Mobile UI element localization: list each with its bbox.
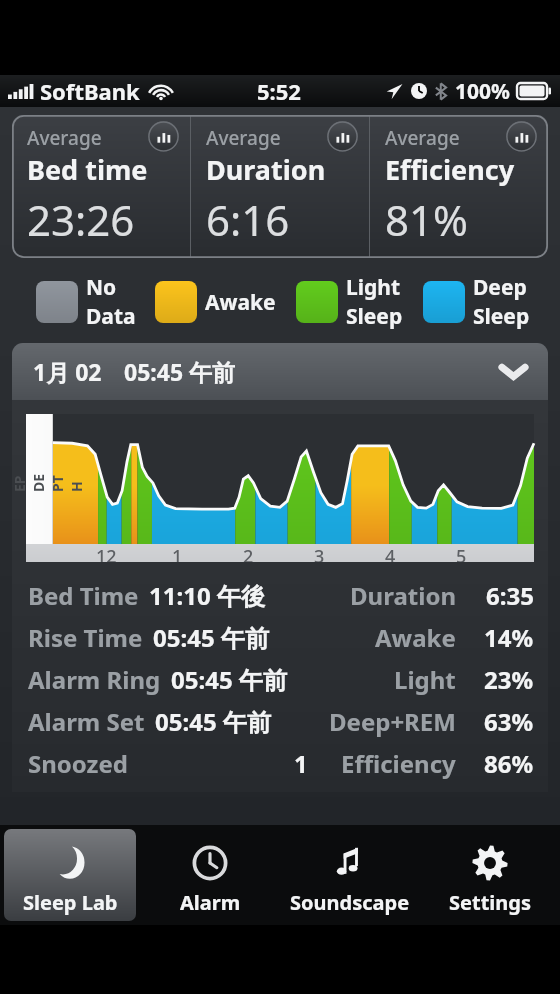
staticText: Duration [206,151,326,188]
staticText: 12 [96,544,117,562]
staticText: 2 [243,544,254,562]
button[interactable]: Sleep Lab [4,829,136,921]
other: Expand [500,363,527,380]
staticText: Sleep [346,302,403,331]
staticText: 1 [294,747,308,780]
staticText: 11:10 午後 [149,579,265,612]
button[interactable]: Settings [424,829,556,921]
button[interactable]: Light [296,273,403,331]
staticText: 05:45 午前 [153,621,269,654]
staticText: Alarm [180,889,241,916]
staticText: Deep+REM [329,705,456,738]
staticText: 63% [484,705,534,738]
staticText: Bed Time [28,579,139,612]
staticText: Average [385,125,460,151]
button[interactable]: Alarm Set [28,700,534,742]
staticText: 3 [314,544,325,562]
staticText: Alarm Set [28,705,145,738]
staticText: Deep [473,273,527,302]
staticText: 05:45 午前 [155,705,271,738]
button[interactable]: 1月 02 [12,343,548,400]
staticText: Duration [350,579,456,612]
other: Chart [506,121,537,152]
staticText: 1月 02 [33,356,102,387]
staticText: 6:16 [206,191,290,248]
button[interactable]: Average [12,115,190,258]
button[interactable]: Soundscape [284,829,416,921]
other: Chart [148,121,179,152]
staticText: Awake [205,288,276,317]
staticText: Average [206,125,281,151]
staticText: 05:45 午前 [124,356,236,387]
staticText: 23:26 [27,191,135,248]
staticText: 6:35 [486,579,534,612]
staticText: Snoozed [28,747,128,780]
staticText: 100% [455,77,510,106]
staticText: Rise Time [28,621,143,654]
staticText: 23% [484,663,534,696]
staticText: Average [27,125,102,151]
staticText: Data [86,302,136,331]
button[interactable]: No [36,273,136,331]
staticText: 86% [484,747,534,780]
staticText: Sleep Lab [23,889,118,916]
staticText: 1 [172,544,183,562]
staticText: 05:45 午前 [171,663,287,696]
staticText: 5 [456,544,467,562]
staticText: SoftBank [40,76,140,106]
staticText: Efficiency [341,747,456,780]
staticText: Sleep [473,302,530,331]
staticText: Bed time [27,151,148,188]
staticText: No [86,273,117,302]
staticText: Awake [375,621,456,654]
button[interactable]: Deep [423,273,530,331]
staticText: 81% [385,191,468,248]
staticText: SLEEP DEPTH [12,467,86,492]
staticText: 5:52 [257,76,301,106]
staticText: 14% [484,621,534,654]
button[interactable]: Bed Time [28,574,534,616]
staticText: Light [394,663,456,696]
staticText: Alarm Ring [28,663,161,696]
button[interactable]: Rise Time [28,616,534,658]
button[interactable]: Average [191,115,369,258]
button[interactable]: Alarm [144,829,276,921]
button[interactable]: Average [370,115,548,258]
button[interactable]: Awake [155,281,276,323]
staticText: Settings [449,889,531,916]
button[interactable]: Alarm Ring [28,658,534,700]
staticText: Soundscape [290,889,410,916]
button[interactable]: Snoozed [28,742,534,784]
staticText: Light [346,273,401,302]
other: Chart [327,121,358,152]
staticText: Efficiency [385,151,515,188]
staticText: 4 [385,544,396,562]
